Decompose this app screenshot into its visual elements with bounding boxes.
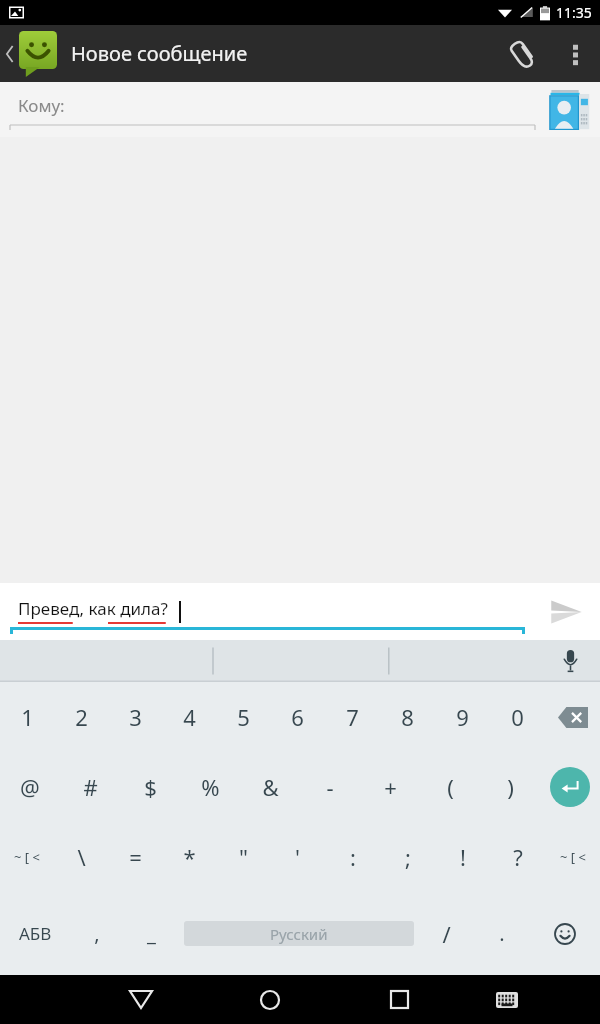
- staticText: Превед, как дила?: [18, 597, 168, 620]
- button[interactable]: %: [180, 752, 240, 822]
- staticText: 5: [237, 702, 250, 732]
- staticText: (: [447, 772, 454, 802]
- staticText: 11:35: [556, 3, 592, 22]
- staticText: Русский: [270, 924, 328, 944]
- button[interactable]: Send: [538, 584, 594, 640]
- staticText: =: [129, 842, 142, 872]
- button[interactable]: Emoji: [529, 892, 600, 975]
- staticText: /: [442, 919, 451, 949]
- button[interactable]: Русский: [179, 892, 419, 975]
- button[interactable]: More options: [550, 29, 600, 79]
- staticText: АБВ: [19, 922, 52, 945]
- staticText: 3: [129, 702, 142, 732]
- button[interactable]: Recent apps: [371, 975, 427, 1024]
- staticText: \: [77, 842, 86, 872]
- button[interactable]: ?: [490, 822, 545, 892]
- button[interactable]: ;: [380, 822, 435, 892]
- staticText: 4: [183, 702, 196, 732]
- staticText: !: [460, 842, 466, 872]
- staticText: ,: [94, 920, 100, 947]
- staticText: *: [183, 842, 196, 872]
- button[interactable]: ): [480, 752, 540, 822]
- button[interactable]: @: [0, 752, 60, 822]
- button[interactable]: Превед, как дила?: [10, 583, 525, 640]
- button[interactable]: Enter: [540, 752, 600, 822]
- button[interactable]: 8: [380, 682, 435, 752]
- button[interactable]: +: [360, 752, 420, 822]
- staticText: ;: [405, 842, 411, 872]
- staticText: ?: [513, 842, 523, 872]
- button[interactable]: Choose contact: [546, 87, 592, 133]
- button[interactable]: &: [240, 752, 300, 822]
- button[interactable]: (: [420, 752, 480, 822]
- button[interactable]: ": [216, 822, 270, 892]
- button[interactable]: 4: [162, 682, 216, 752]
- button[interactable]: Voice input: [552, 643, 588, 679]
- button[interactable]: 7: [325, 682, 380, 752]
- button[interactable]: ~ [ <: [0, 822, 54, 892]
- button[interactable]: :: [325, 822, 380, 892]
- staticText: 7: [346, 702, 359, 732]
- button[interactable]: 5: [216, 682, 270, 752]
- button[interactable]: 3: [108, 682, 162, 752]
- staticText: 0: [511, 702, 524, 732]
- button[interactable]: $: [120, 752, 180, 822]
- staticText: -: [326, 772, 334, 802]
- button[interactable]: #: [60, 752, 120, 822]
- button[interactable]: ': [270, 822, 325, 892]
- staticText: $: [144, 772, 157, 802]
- button[interactable]: 9: [435, 682, 490, 752]
- staticText: Новое сообщение: [71, 40, 248, 67]
- button[interactable]: .: [474, 892, 529, 975]
- button[interactable]: Switch keyboard: [479, 975, 535, 1024]
- staticText: @: [20, 772, 40, 802]
- button[interactable]: /: [419, 892, 474, 975]
- button[interactable]: _: [124, 892, 179, 975]
- staticText: _: [147, 920, 156, 947]
- staticText: .: [499, 920, 505, 947]
- staticText: &: [262, 772, 279, 802]
- staticText: ): [507, 772, 514, 802]
- button[interactable]: \: [54, 822, 108, 892]
- staticText: +: [384, 772, 397, 802]
- staticText: 6: [291, 702, 304, 732]
- staticText: ~ [ <: [560, 848, 586, 866]
- button[interactable]: Hide keyboard: [113, 975, 169, 1024]
- button[interactable]: ~ [ <: [545, 822, 600, 892]
- staticText: 9: [456, 702, 469, 732]
- staticText: 2: [75, 702, 88, 732]
- staticText: 8: [401, 702, 414, 732]
- button[interactable]: 1: [0, 682, 54, 752]
- button[interactable]: =: [108, 822, 162, 892]
- button[interactable]: Home: [242, 975, 298, 1024]
- button[interactable]: !: [435, 822, 490, 892]
- button[interactable]: Back: [0, 25, 61, 82]
- staticText: #: [83, 772, 98, 802]
- button[interactable]: АБВ: [0, 892, 70, 975]
- staticText: ~ [ <: [14, 848, 40, 866]
- button[interactable]: -: [300, 752, 360, 822]
- staticText: ": [239, 842, 248, 872]
- button[interactable]: 2: [54, 682, 108, 752]
- staticText: 1: [21, 702, 34, 732]
- button[interactable]: 0: [490, 682, 545, 752]
- staticText: :: [350, 842, 356, 872]
- button[interactable]: Attach: [494, 26, 550, 82]
- button[interactable]: 6: [270, 682, 325, 752]
- button[interactable]: ,: [70, 892, 124, 975]
- button[interactable]: *: [162, 822, 216, 892]
- staticText: Кому:: [18, 94, 65, 117]
- button[interactable]: Кому:: [10, 82, 530, 137]
- button[interactable]: Delete: [545, 682, 600, 752]
- staticText: ': [295, 842, 300, 872]
- staticText: %: [201, 772, 220, 802]
